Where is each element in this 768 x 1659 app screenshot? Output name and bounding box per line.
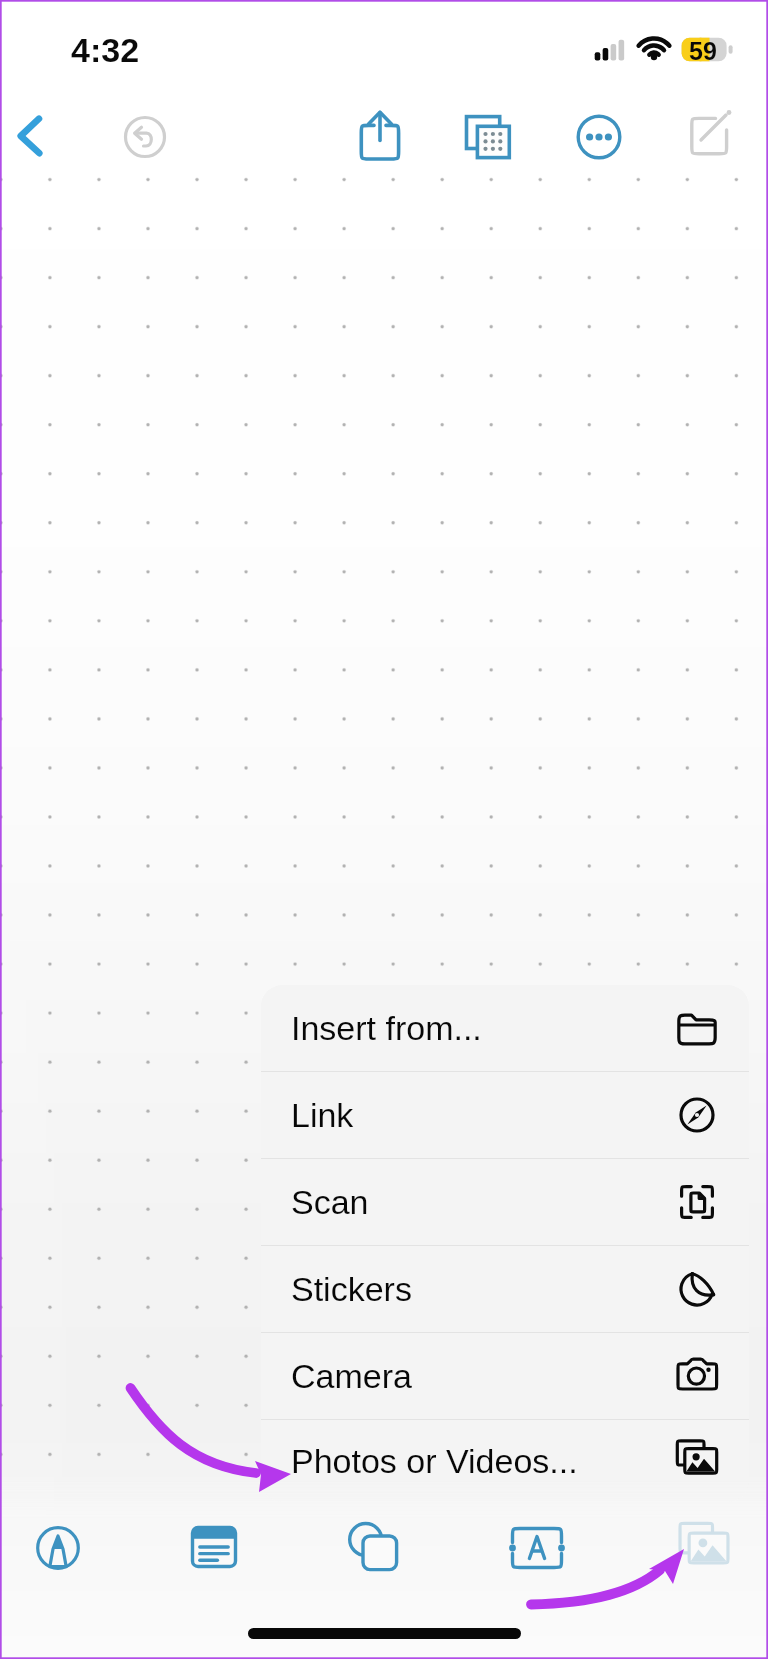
staticText: Camera — [291, 1357, 674, 1395]
button[interactable]: Share — [351, 107, 409, 165]
staticText: Insert from... — [291, 1009, 674, 1047]
button[interactable]: Text box — [508, 1519, 566, 1577]
button[interactable]: Boards — [459, 108, 517, 166]
button[interactable]: Photos or Videos... — [261, 1420, 749, 1502]
button[interactable]: More — [571, 109, 627, 165]
button[interactable]: Note — [188, 1521, 240, 1573]
button[interactable]: Markup — [31, 1521, 85, 1575]
staticText: 4:32 — [71, 31, 140, 69]
button[interactable]: Camera — [261, 1333, 749, 1419]
button[interactable]: Link — [261, 1072, 749, 1158]
button[interactable]: Scan — [261, 1159, 749, 1245]
button[interactable]: Back — [2, 108, 58, 164]
button[interactable]: New note — [681, 108, 737, 164]
staticText: Scan — [291, 1183, 674, 1221]
button[interactable]: Insert from... — [261, 985, 749, 1071]
staticText: 59 — [689, 37, 717, 65]
button[interactable]: Shapes — [347, 1521, 401, 1575]
staticText: Photos or Videos... — [291, 1442, 674, 1480]
button[interactable]: Media — [676, 1520, 732, 1576]
staticText: Link — [291, 1096, 674, 1134]
button[interactable]: Stickers — [261, 1246, 749, 1332]
button[interactable]: Undo — [117, 109, 173, 165]
staticText: Stickers — [291, 1270, 674, 1308]
